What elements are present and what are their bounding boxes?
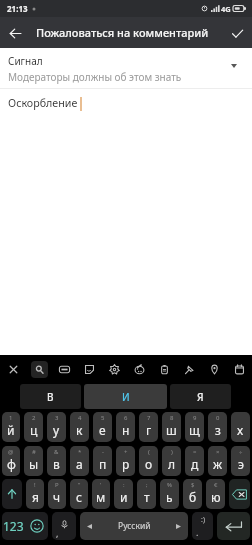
staticText: :	[123, 481, 125, 489]
button[interactable]: %	[160, 479, 179, 509]
staticText: х	[237, 422, 244, 438]
staticText: ф	[7, 456, 16, 472]
staticText: #	[32, 448, 36, 456]
button[interactable]: Emoticon	[192, 512, 213, 540]
staticText: о	[145, 456, 153, 472]
button[interactable]: 2	[24, 412, 43, 442]
staticText: 123	[3, 518, 24, 534]
button[interactable]: Я	[170, 384, 231, 409]
staticText: %	[167, 481, 172, 489]
staticText: л	[168, 456, 176, 472]
button[interactable]: #	[24, 446, 43, 476]
button[interactable]: 0	[208, 412, 227, 442]
staticText: ш	[166, 422, 177, 438]
staticText: ÷	[239, 448, 243, 456]
button[interactable]: )	[162, 446, 181, 476]
staticText: "	[78, 481, 81, 489]
staticText: 4	[78, 414, 82, 422]
button[interactable]: Backspace	[229, 479, 250, 509]
staticText: (	[148, 448, 150, 456]
staticText: 5	[101, 414, 105, 422]
button[interactable]: *	[70, 446, 89, 476]
staticText: 9	[193, 414, 197, 422]
button[interactable]: Back	[0, 18, 30, 48]
staticText: 21:13	[7, 3, 28, 14]
button[interactable]: +	[116, 446, 135, 476]
button[interactable]: Shift	[2, 479, 22, 509]
staticText: н	[122, 422, 130, 438]
button[interactable]: (	[139, 446, 158, 476]
staticText: И	[122, 390, 130, 404]
button[interactable]: Theme	[127, 355, 152, 384]
button[interactable]: 7	[139, 412, 158, 442]
staticText: 1	[9, 414, 13, 422]
button[interactable]: Stickers	[77, 355, 102, 384]
button[interactable]: 9	[185, 412, 204, 442]
button[interactable]: 5	[93, 412, 112, 442]
button[interactable]: Location	[202, 355, 227, 384]
staticText: 6	[124, 414, 128, 422]
staticText: е	[99, 422, 106, 438]
button[interactable]: Voice input	[52, 512, 76, 540]
button[interactable]: 8	[162, 412, 181, 442]
button[interactable]: ÷	[231, 446, 250, 476]
button[interactable]: Settings	[102, 355, 127, 384]
button[interactable]: Clipboard	[152, 355, 177, 384]
button[interactable]: Enter	[217, 512, 250, 540]
staticText: ы	[29, 456, 39, 472]
staticText: В	[47, 390, 54, 404]
button[interactable]: Close keyboard	[0, 355, 26, 384]
staticText: г	[146, 422, 152, 438]
button[interactable]: Submit report	[222, 18, 252, 48]
button[interactable]: '	[92, 479, 110, 509]
button[interactable]: ;	[137, 479, 156, 509]
button[interactable]: &	[47, 446, 66, 476]
staticText: )	[171, 448, 173, 456]
staticText: ч	[53, 489, 61, 505]
button[interactable]: =	[185, 446, 204, 476]
button[interactable]: 6	[116, 412, 135, 442]
button[interactable]: "	[70, 479, 88, 509]
button[interactable]: 3	[47, 412, 66, 442]
button[interactable]: :	[114, 479, 133, 509]
button[interactable]: Pin	[177, 355, 202, 384]
staticText: Сигнал	[8, 54, 43, 68]
button[interactable]: !	[26, 479, 44, 509]
button[interactable]: В	[20, 384, 81, 409]
staticText: =	[193, 448, 197, 456]
button[interactable]: ×	[208, 446, 227, 476]
staticText: 2	[32, 414, 36, 422]
button[interactable]: Search	[26, 355, 52, 384]
staticText: Пожаловаться на комментарий	[36, 25, 209, 40]
button[interactable]: $	[183, 479, 202, 509]
staticText: ,	[56, 527, 59, 539]
button[interactable]: 123	[2, 512, 25, 540]
staticText: а	[76, 456, 83, 472]
staticText: @	[8, 448, 14, 456]
staticText: в	[53, 456, 60, 472]
button[interactable]: х	[231, 412, 250, 442]
button[interactable]: 1	[2, 412, 20, 442]
button[interactable]: Emoji	[25, 512, 48, 540]
button[interactable]: Calendar	[227, 355, 252, 384]
staticText: Модераторы должны об этом знать	[8, 70, 182, 84]
button[interactable]: Р	[48, 479, 66, 509]
staticText: 8	[170, 414, 174, 422]
button[interactable]: €	[206, 479, 225, 509]
staticText: с	[76, 489, 82, 505]
staticText: я	[32, 489, 39, 505]
button[interactable]: GIF	[52, 355, 77, 384]
button[interactable]: -	[93, 446, 112, 476]
staticText: щ	[189, 422, 200, 438]
staticText: 3	[55, 414, 59, 422]
button[interactable]: @	[2, 446, 20, 476]
button[interactable]: И	[84, 384, 167, 409]
button[interactable]: Сигнал	[0, 48, 252, 88]
staticText: з	[215, 422, 221, 438]
staticText: т	[144, 489, 150, 505]
staticText: й	[7, 422, 15, 438]
button[interactable]: 4	[70, 412, 89, 442]
button[interactable]: Space	[80, 512, 188, 540]
staticText: *	[78, 448, 82, 456]
staticText: к	[76, 422, 83, 438]
